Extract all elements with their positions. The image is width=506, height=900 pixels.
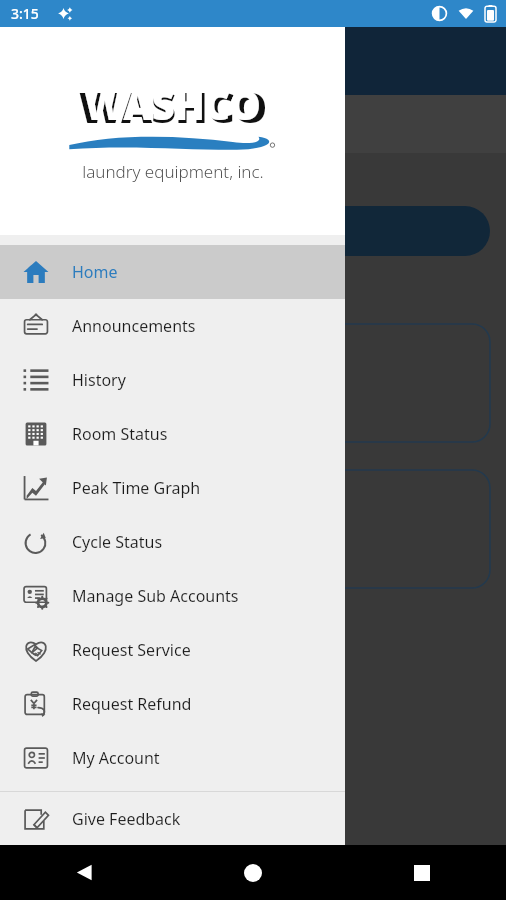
button[interactable]: Manage Sub Accounts	[0, 569, 345, 623]
button[interactable]: FILL MY ACCOUNT	[16, 206, 490, 256]
staticText: Give Feedback	[72, 808, 181, 830]
staticText: Room Status	[72, 423, 168, 445]
staticText: Select a machine	[20, 288, 139, 308]
staticText: 3:15	[11, 4, 39, 23]
button[interactable]: Announcements	[0, 299, 345, 353]
staticText: WASHCO	[79, 77, 267, 129]
button[interactable]: My Account	[0, 731, 345, 785]
staticText: Announcements	[72, 315, 196, 337]
button[interactable]: Request Refund	[0, 677, 345, 731]
staticText: Request Service	[72, 639, 191, 661]
button[interactable]: Recent apps	[337, 845, 506, 900]
staticText: Request Refund	[72, 693, 192, 715]
button[interactable]: Scan machine	[16, 324, 490, 442]
staticText: Home	[72, 261, 118, 283]
staticText: Peak Time Graph	[72, 477, 201, 499]
staticText: SRC: vc00066	[205, 114, 302, 134]
button[interactable]: Room Status	[0, 407, 345, 461]
staticText: WASHCO	[84, 77, 261, 129]
button[interactable]: Peak Time Graph	[0, 461, 345, 515]
button[interactable]: History	[0, 353, 345, 407]
staticText: WASHCO	[83, 76, 263, 128]
staticText: My Account	[72, 747, 160, 769]
staticText: laundry equipment, inc.	[82, 160, 264, 183]
staticText: Scan machine	[42, 372, 153, 395]
button[interactable]: Home	[168, 845, 337, 900]
staticText: Enter code	[42, 518, 128, 541]
staticText: Cycle Status	[72, 531, 163, 553]
staticText: Manage Sub Accounts	[72, 585, 239, 607]
button[interactable]: Home	[0, 245, 345, 299]
staticText: History	[72, 369, 126, 391]
button[interactable]: Cycle Status	[0, 515, 345, 569]
button[interactable]: Enter code	[16, 470, 490, 588]
button[interactable]: Give Feedback	[0, 792, 345, 846]
staticText: FILL MY ACCOUNT	[183, 221, 323, 241]
button[interactable]: Back	[0, 845, 168, 900]
button[interactable]: Request Service	[0, 623, 345, 677]
